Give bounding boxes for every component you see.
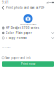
button[interactable]: Print now [2, 61, 54, 67]
staticText: 9:41 [2, 1, 9, 4]
staticText: Color Plain paper [6, 31, 32, 35]
button[interactable]: Save paper and ink [0, 56, 56, 60]
button[interactable]: HP DeskJet 3700 series [0, 25, 56, 30]
button[interactable]: 1 copy Portrait [0, 35, 56, 40]
button[interactable]: Back [2, 5, 5, 10]
staticText: More settings [2, 46, 11, 48]
staticText: HP DeskJet 3700 series [6, 26, 39, 30]
staticText: Select a printer to continue [19, 23, 36, 25]
staticText: Save paper and ink [5, 56, 30, 60]
staticText: 1 copy Portrait [6, 36, 27, 40]
staticText: Print now [21, 62, 35, 66]
staticText: Print photo and save as PDF [6, 6, 44, 9]
button[interactable]: Color Plain paper [0, 30, 56, 35]
